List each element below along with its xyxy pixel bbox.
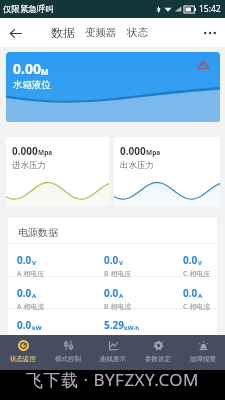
button[interactable]: 0.00 — [6, 52, 220, 122]
staticText: 15:42 — [199, 3, 221, 15]
staticText: V — [198, 259, 202, 267]
button[interactable]: 模式控制 — [45, 335, 90, 370]
staticText: 0.0 — [17, 318, 32, 332]
button[interactable]: 0.0 — [8, 276, 95, 310]
staticText: kW — [32, 324, 42, 332]
staticText: 0.00 — [13, 59, 41, 78]
staticText: V — [119, 259, 123, 267]
staticText: 飞下载 · BYFZXY.COM — [26, 368, 199, 391]
button[interactable]: 5.29 — [95, 308, 174, 342]
staticText: A — [32, 292, 37, 300]
staticText: 0.000 — [120, 144, 146, 158]
button[interactable]: Warning — [198, 59, 209, 70]
button[interactable]: 0.0 — [95, 243, 174, 277]
staticText: 故障报警 — [190, 355, 216, 363]
staticText: 0.0 — [183, 253, 198, 267]
staticText: 5.29 — [104, 318, 124, 332]
staticText: A 相电流 — [17, 302, 45, 310]
staticText: 参数设定 — [145, 355, 171, 363]
button[interactable]: 曲线显示 — [90, 335, 135, 370]
staticText: B 相电压 — [104, 269, 132, 277]
staticText: 0.0 — [183, 286, 198, 300]
staticText: M — [41, 66, 49, 77]
staticText: 曲线显示 — [100, 355, 126, 363]
button[interactable]: 故障报警 — [180, 335, 225, 370]
button[interactable]: 0.0 — [95, 276, 174, 310]
staticText: 状态 — [127, 26, 148, 39]
staticText: Mpa — [146, 148, 161, 157]
staticText: A — [119, 292, 124, 300]
button[interactable]: 参数设定 — [135, 335, 180, 370]
button[interactable]: 状态监控 — [0, 335, 45, 370]
staticText: B 相电流 — [104, 302, 132, 310]
button[interactable]: 0.0 — [174, 276, 217, 310]
staticText: 0.0 — [104, 286, 119, 300]
staticText: 0.0 — [104, 253, 119, 267]
staticText: 0.0 — [17, 286, 32, 300]
button[interactable]: Back — [2, 20, 28, 46]
staticText: A — [198, 292, 203, 300]
button[interactable]: 0.000 — [114, 137, 220, 206]
button[interactable]: 0.000 — [6, 137, 109, 206]
staticText: 电能 — [104, 334, 118, 342]
staticText: 有功功率 — [17, 334, 45, 342]
button[interactable]: 0.0 — [8, 308, 95, 342]
staticText: C 相电压 — [183, 269, 211, 277]
staticText: 电源数据 — [18, 226, 58, 239]
staticText: 状态监控 — [10, 355, 36, 363]
button[interactable]: 0.0 — [174, 243, 217, 277]
staticText: A 相电压 — [17, 269, 45, 277]
staticText: C 相电流 — [183, 302, 211, 310]
button[interactable]: More options — [197, 20, 223, 46]
staticText: 进水压力 — [12, 160, 46, 171]
staticText: 出水压力 — [120, 160, 154, 171]
button[interactable]: 变频器 — [80, 21, 122, 44]
staticText: Mpa — [38, 148, 53, 157]
staticText: 变频器 — [85, 26, 117, 39]
staticText: 模式控制 — [55, 355, 81, 363]
button[interactable]: 0.0 — [8, 243, 95, 277]
staticText: kW·h — [124, 324, 140, 332]
button[interactable]: 数据 — [46, 20, 80, 45]
staticText: 0.0 — [17, 253, 32, 267]
staticText: 水箱液位 — [13, 79, 51, 91]
staticText: 仅限紧急呼叫 — [3, 4, 54, 15]
staticText: 0.000 — [12, 144, 38, 158]
staticText: V — [32, 259, 36, 267]
button[interactable]: 状态 — [122, 21, 153, 44]
staticText: 数据 — [51, 25, 75, 40]
button[interactable] — [174, 308, 217, 342]
